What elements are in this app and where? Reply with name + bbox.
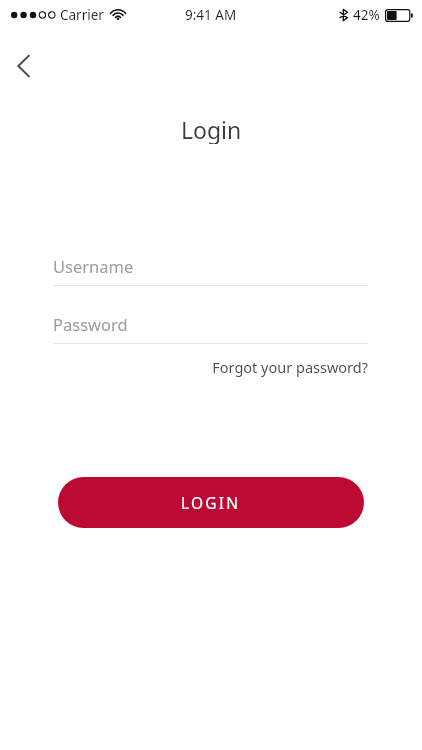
button[interactable]: Username bbox=[53, 247, 368, 286]
staticText: 42% bbox=[353, 6, 380, 24]
button[interactable]: Forgot your password? bbox=[53, 354, 368, 380]
staticText: LOGIN bbox=[181, 492, 241, 513]
staticText: 9:41 AM bbox=[185, 6, 237, 24]
staticText: Forgot your password? bbox=[212, 357, 368, 377]
button[interactable]: LOGIN bbox=[58, 477, 364, 528]
staticText: Username bbox=[53, 255, 134, 277]
staticText: Login bbox=[181, 114, 242, 144]
staticText: Password bbox=[53, 313, 128, 335]
staticText: Carrier bbox=[60, 6, 104, 24]
button[interactable]: Password bbox=[53, 305, 368, 344]
button[interactable]: Back bbox=[4, 46, 44, 86]
